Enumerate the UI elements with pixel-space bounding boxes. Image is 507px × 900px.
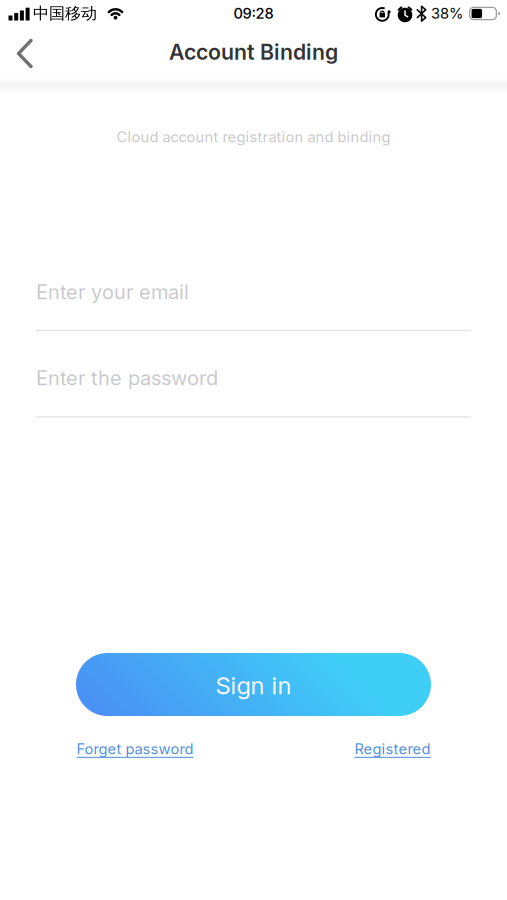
staticText: Cloud account registration and binding	[116, 128, 390, 146]
staticText: Account Binding	[169, 39, 338, 65]
button[interactable]: Registered	[354, 740, 430, 758]
button[interactable]: Back	[3, 32, 47, 74]
staticText: Forget password	[76, 740, 193, 758]
staticText: 中国移动	[33, 4, 97, 23]
staticText: 09:28	[233, 5, 273, 22]
button[interactable]: Forget password	[76, 740, 193, 758]
staticText: Registered	[354, 740, 430, 758]
staticText: Enter your email	[36, 280, 189, 304]
button[interactable]: Sign in	[76, 653, 431, 716]
staticText: 38%	[431, 5, 463, 22]
staticText: Sign in	[215, 671, 291, 700]
staticText: Enter the password	[36, 366, 218, 390]
